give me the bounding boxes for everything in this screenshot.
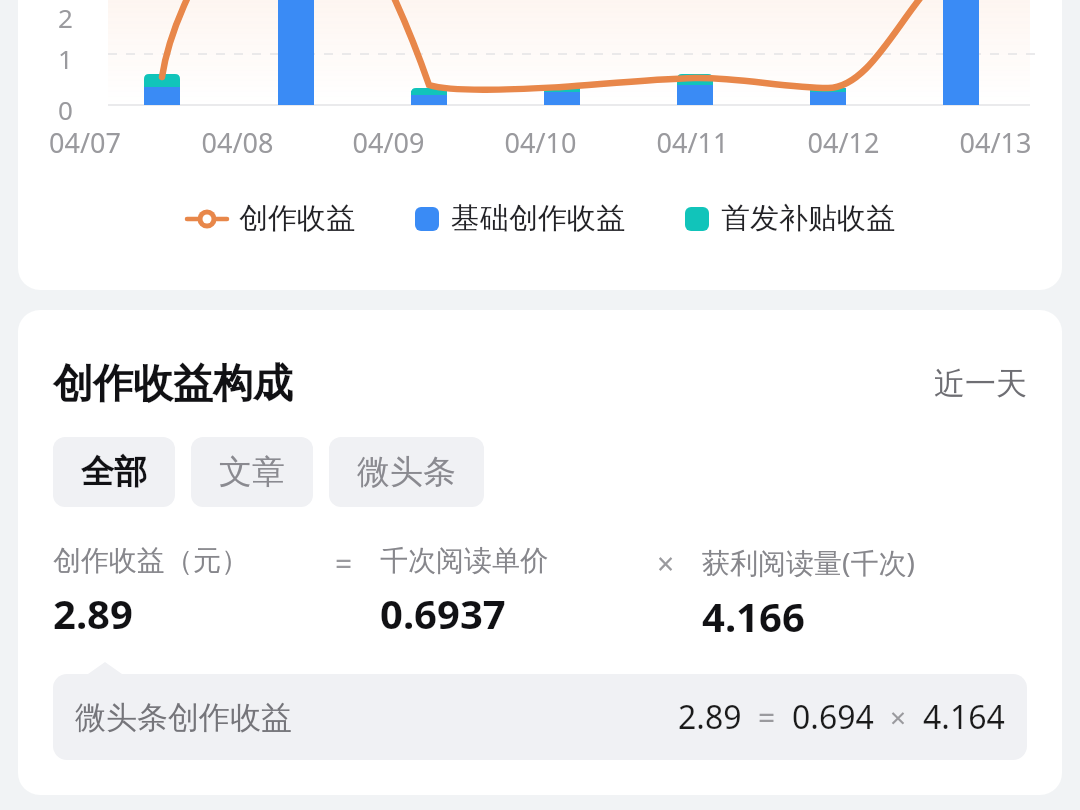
staticText: 04/12 xyxy=(777,124,910,161)
button[interactable]: 微头条创作收益 xyxy=(53,674,1027,760)
staticText: 2 xyxy=(58,0,73,35)
staticText: 4.164 xyxy=(923,695,1005,739)
staticText: 1 xyxy=(58,41,73,76)
button[interactable]: 全部 xyxy=(53,437,175,507)
staticText: 创作收益（元） xyxy=(53,543,249,578)
staticText: 0 xyxy=(58,92,73,127)
staticText: 0.694 xyxy=(792,695,874,739)
staticText: 04/08 xyxy=(171,124,304,161)
staticText: 首发补贴收益 xyxy=(721,200,895,237)
button[interactable]: 近一天 xyxy=(934,364,1027,403)
staticText: 4.166 xyxy=(702,589,805,643)
staticText: 全部 xyxy=(81,451,147,493)
staticText: 微头条创作收益 xyxy=(75,698,292,737)
staticText: 获利阅读量(千次) xyxy=(702,543,915,581)
staticText: 文章 xyxy=(219,451,285,493)
staticText: × xyxy=(890,698,907,736)
staticText: 微头条 xyxy=(357,451,456,493)
staticText: × xyxy=(657,543,675,584)
staticText: 近一天 xyxy=(934,364,1027,403)
button[interactable]: 微头条 xyxy=(329,437,484,507)
staticText: = xyxy=(335,543,353,584)
staticText: 0.6937 xyxy=(380,586,506,640)
staticText: 千次阅读单价 xyxy=(380,543,548,578)
staticText: 创作收益 xyxy=(239,200,355,237)
staticText: 04/09 xyxy=(322,124,455,161)
staticText: = xyxy=(758,697,776,738)
staticText: 04/07 xyxy=(18,124,152,161)
staticText: 创作收益构成 xyxy=(53,358,293,408)
staticText: 2.89 xyxy=(678,695,742,739)
staticText: 04/11 xyxy=(626,124,759,161)
staticText: 2.89 xyxy=(53,586,133,640)
button[interactable]: 文章 xyxy=(191,437,313,507)
staticText: 基础创作收益 xyxy=(451,200,625,237)
staticText: 04/10 xyxy=(474,124,607,161)
staticText: 04/13 xyxy=(929,124,1062,161)
